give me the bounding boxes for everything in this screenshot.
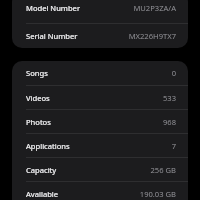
button[interactable]: Songs (12, 61, 188, 85)
button[interactable]: Photos (12, 110, 188, 133)
staticText: Available (26, 189, 59, 199)
button[interactable]: Available (12, 182, 188, 200)
staticText: Serial Number (26, 31, 78, 41)
staticText: 190.03 GB (139, 189, 176, 199)
staticText: MX226H9TX7 (128, 31, 176, 41)
staticText: MU2P3ZA/A (133, 3, 176, 13)
staticText: Applications (26, 141, 70, 151)
staticText: 533 (162, 93, 176, 103)
button[interactable]: Applications (12, 134, 188, 157)
staticText: 0 (171, 68, 176, 78)
button[interactable]: Serial Number (12, 24, 188, 48)
staticText: Capacity (26, 165, 57, 175)
staticText: Model Number (26, 3, 81, 13)
staticText: 7 (171, 141, 176, 151)
staticText: Videos (26, 93, 50, 103)
button[interactable]: Model Number (12, 0, 188, 23)
staticText: 968 (162, 117, 176, 127)
button[interactable]: Videos (12, 86, 188, 109)
staticText: Photos (26, 117, 51, 127)
staticText: 256 GB (150, 165, 176, 175)
staticText: Songs (26, 68, 48, 78)
button[interactable]: Capacity (12, 158, 188, 181)
